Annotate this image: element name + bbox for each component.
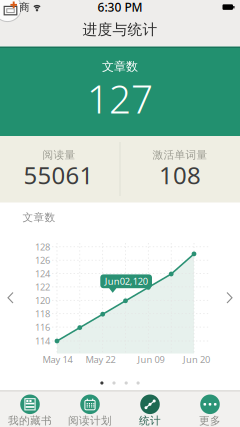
button[interactable]: 统计 (120, 390, 180, 427)
staticText: 商 (19, 1, 30, 14)
button[interactable]: 更多 (180, 390, 240, 427)
staticText: 126 (35, 254, 50, 266)
staticText: 更多 (199, 414, 221, 427)
staticText: 118 (35, 307, 50, 320)
staticText: Jun 20 (183, 353, 210, 366)
staticText: Jun 09 (137, 353, 164, 366)
staticText: 114 (35, 335, 50, 347)
staticText: 统计 (139, 414, 161, 427)
staticText: 128 (35, 241, 50, 253)
staticText: Jun02,120 (105, 275, 148, 287)
staticText: 文章数 (22, 211, 55, 224)
button[interactable]: Next chart (220, 284, 238, 310)
button[interactable]: 阅读计划 (60, 390, 120, 427)
staticText: 127 (87, 73, 153, 124)
button[interactable]: 我的藏书 (0, 390, 60, 427)
staticText: May 14 (42, 353, 72, 366)
staticText: 阅读计划 (68, 414, 112, 427)
staticText: 108 (159, 159, 201, 191)
staticText: 55061 (23, 159, 93, 191)
staticText: 文章数 (102, 59, 138, 74)
staticText: 进度与统计 (82, 20, 157, 38)
staticText: 116 (35, 321, 50, 333)
button[interactable]: Previous chart (1, 284, 19, 310)
staticText: 6:30 PM (97, 0, 142, 15)
staticText: 120 (35, 294, 50, 306)
staticText: 122 (35, 281, 50, 293)
staticText: May 22 (85, 353, 115, 366)
staticText: 阅读量 (42, 148, 75, 161)
staticText: 激活单词量 (152, 148, 207, 161)
staticText: 我的藏书 (8, 414, 52, 427)
staticText: 124 (35, 267, 50, 280)
